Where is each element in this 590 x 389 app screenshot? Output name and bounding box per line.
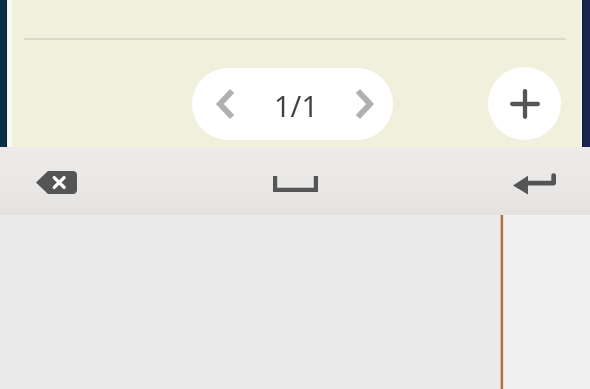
button[interactable]: Enter (394, 147, 590, 215)
button[interactable]: Add (488, 67, 561, 140)
button[interactable]: Next page (338, 68, 390, 140)
staticText: 1/1 (274, 86, 318, 125)
button[interactable]: Backspace (0, 147, 197, 215)
button[interactable]: Previous page (200, 68, 252, 140)
button[interactable]: Space (197, 147, 394, 215)
